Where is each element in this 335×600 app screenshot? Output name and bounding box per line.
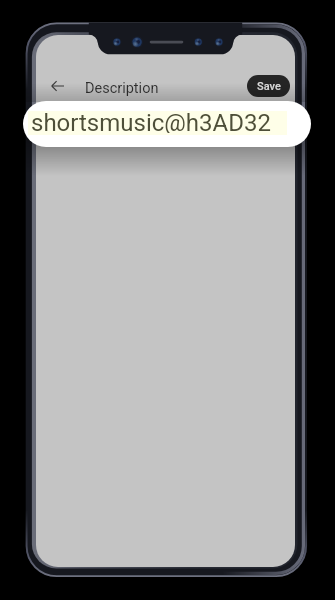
button[interactable]: Back [43,72,71,100]
staticText: shortsmusic@h3AD32 [31,109,271,133]
button[interactable]: shortsmusic@h3AD32 [23,101,311,147]
button[interactable]: Save [247,75,290,97]
staticText: Save [257,80,281,93]
staticText: Description [85,80,159,97]
